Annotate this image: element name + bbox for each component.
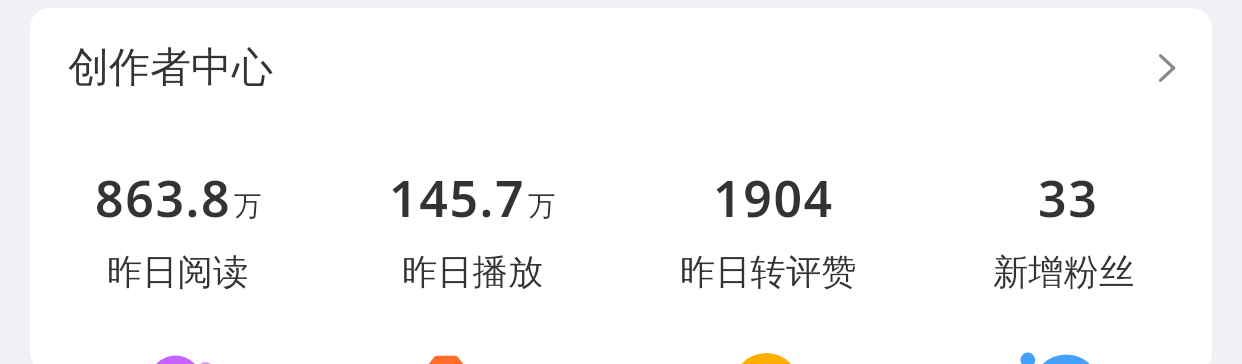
button[interactable]: 发视频 [325,338,620,364]
button[interactable]: 1904 [620,164,916,294]
staticText: 万 [528,189,556,224]
other: 进入创作者中心 [1154,53,1184,83]
staticText: 新增粉丝 [993,250,1135,294]
button[interactable]: 发文章 [30,338,325,364]
button[interactable]: 创作者中心 [30,8,1212,128]
staticText: 创作者中心 [68,42,273,94]
button[interactable]: 863.8 [30,164,325,294]
button[interactable]: 33 [916,164,1212,294]
staticText: 863.8 [95,164,232,232]
staticText: 昨日转评赞 [680,250,857,294]
staticText: 万 [234,189,262,224]
button[interactable]: 开直播 [620,338,916,364]
staticText: 1904 [713,164,834,232]
staticText: 33 [1038,164,1099,232]
staticText: 昨日阅读 [107,250,249,294]
staticText: 昨日播放 [402,250,544,294]
button[interactable]: 145.7 [325,164,620,294]
staticText: 145.7 [389,164,526,232]
button[interactable]: 粉丝群 [916,338,1212,364]
